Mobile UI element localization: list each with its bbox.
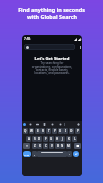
- button[interactable]: H: [55, 136, 60, 142]
- button[interactable]: Q: [23, 128, 28, 134]
- staticText: Find anything in seconds: [18, 6, 85, 13]
- button[interactable]: Keyboard tool: [77, 123, 80, 126]
- button[interactable]: .: [67, 151, 72, 157]
- button[interactable]: Space: [37, 151, 67, 157]
- staticText: R: [42, 129, 44, 133]
- button[interactable]: Shift: [23, 143, 30, 149]
- button[interactable]: Y: [52, 128, 57, 134]
- staticText: Z: [34, 144, 36, 148]
- button[interactable]: Backspace: [74, 143, 81, 149]
- staticText: J: [62, 137, 63, 141]
- button[interactable]: L: [72, 136, 77, 142]
- staticText: G: [50, 137, 53, 141]
- button[interactable]: E: [35, 128, 40, 134]
- staticText: E: [37, 129, 39, 133]
- button[interactable]: W: [29, 128, 34, 134]
- button[interactable]: ,: [32, 151, 37, 157]
- staticText: T: [48, 129, 50, 133]
- staticText: ,: [34, 152, 35, 156]
- staticText: K: [68, 137, 70, 141]
- staticText: W: [30, 129, 33, 133]
- button[interactable]: G: [49, 136, 54, 142]
- button[interactable]: V: [49, 143, 54, 149]
- button[interactable]: [24, 44, 75, 50]
- button[interactable]: O: [69, 128, 74, 134]
- button[interactable]: B: [55, 143, 60, 149]
- button[interactable]: Keyboard tool: [59, 123, 62, 126]
- button[interactable]: Settings: [77, 123, 80, 126]
- staticText: X: [39, 144, 41, 148]
- button[interactable]: Keyboard tool: [29, 123, 32, 126]
- button[interactable]: N: [60, 143, 65, 149]
- button[interactable]: S: [32, 136, 37, 142]
- button[interactable]: Keyboard tool: [36, 123, 39, 126]
- staticText: C: [45, 144, 47, 148]
- staticText: A: [28, 137, 30, 141]
- staticText: D: [38, 137, 41, 141]
- staticText: ?123: [24, 153, 30, 156]
- button[interactable]: More options: [77, 44, 82, 50]
- staticText: .: [69, 152, 70, 156]
- button[interactable]: P: [75, 128, 80, 134]
- button[interactable]: R: [40, 128, 45, 134]
- staticText: 7:55: [24, 37, 31, 41]
- staticText: with Global Search: [27, 13, 77, 20]
- staticText: P: [77, 129, 79, 133]
- button[interactable]: I: [63, 128, 68, 134]
- staticText: O: [70, 129, 73, 133]
- staticText: M: [67, 144, 70, 148]
- button[interactable]: Keyboard tool: [51, 123, 54, 126]
- button[interactable]: D: [37, 136, 42, 142]
- staticText: U: [59, 129, 62, 133]
- button[interactable]: C: [43, 143, 48, 149]
- button[interactable]: M: [66, 143, 71, 149]
- button[interactable]: Z: [32, 143, 37, 149]
- button[interactable]: J: [60, 136, 65, 142]
- staticText: F: [45, 137, 47, 141]
- button[interactable]: U: [58, 128, 63, 134]
- button[interactable]: X: [37, 143, 42, 149]
- staticText: I: [65, 129, 67, 133]
- button[interactable]: Keyboard tool: [43, 123, 46, 126]
- button[interactable]: ?123: [23, 151, 31, 157]
- staticText: B: [57, 144, 59, 148]
- staticText: H: [56, 137, 59, 141]
- button[interactable]: T: [46, 128, 51, 134]
- staticText: L: [74, 137, 76, 141]
- staticText: S: [34, 137, 36, 141]
- button[interactable]: F: [43, 136, 48, 142]
- staticText: N: [61, 144, 64, 148]
- staticText: Y: [54, 129, 56, 133]
- button[interactable]: Google: [23, 123, 26, 126]
- button[interactable]: Enter: [73, 151, 79, 157]
- staticText: Q: [24, 129, 27, 133]
- staticText: V: [51, 144, 53, 148]
- button[interactable]: K: [66, 136, 71, 142]
- button[interactable]: A: [26, 136, 31, 142]
- staticText: Try searching for organizations, configu…: [31, 61, 73, 75]
- staticText: Let's Get Started: [22, 56, 82, 62]
